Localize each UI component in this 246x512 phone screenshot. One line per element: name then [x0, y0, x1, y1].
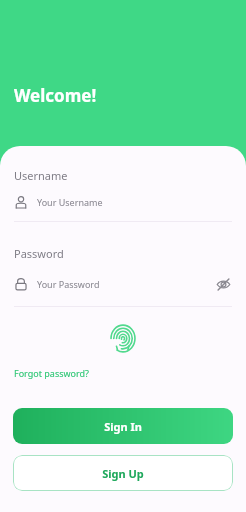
button[interactable]: Your Username	[0, 195, 246, 209]
staticText: Username	[14, 168, 68, 183]
staticText: Forgot password?	[14, 367, 90, 379]
staticText: Your Password	[37, 278, 100, 290]
button[interactable]: Forgot password?	[14, 367, 90, 379]
button[interactable]: Show password	[212, 273, 234, 295]
button[interactable]: Your Password	[14, 277, 100, 291]
staticText: Sign In	[104, 419, 142, 434]
button[interactable]: Sign In	[13, 408, 233, 444]
staticText: Your Username	[37, 196, 103, 208]
button[interactable]: Sign Up	[13, 455, 233, 491]
staticText: Welcome!	[14, 84, 97, 107]
staticText: Password	[14, 246, 64, 261]
staticText: Sign Up	[102, 466, 144, 481]
button[interactable]: Fingerprint login	[106, 321, 140, 355]
